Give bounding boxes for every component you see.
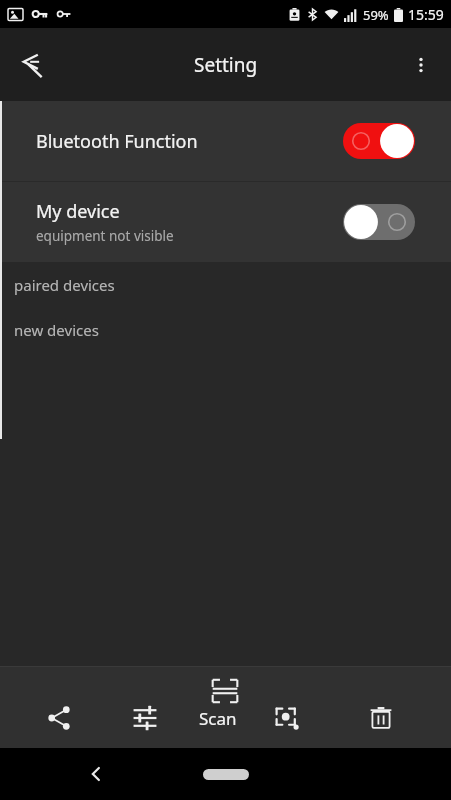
button[interactable]: Scan frame <box>203 669 247 713</box>
button[interactable]: Share <box>10 696 107 740</box>
button[interactable]: new devices <box>0 307 451 352</box>
staticText: Bluetooth Function <box>36 129 198 154</box>
button[interactable]: Back <box>76 754 116 794</box>
button[interactable]: Bluetooth Function <box>0 101 451 181</box>
button[interactable]: Focus scan <box>252 696 321 740</box>
staticText: 15:59 <box>408 5 444 24</box>
button[interactable]: On <box>343 123 415 159</box>
staticText: My device <box>36 199 120 224</box>
staticText: equipment not visible <box>36 227 174 245</box>
button[interactable]: Filter <box>107 696 183 740</box>
button[interactable]: My device <box>0 182 451 262</box>
button[interactable]: Delete <box>321 696 441 740</box>
staticText: 59% <box>363 6 389 24</box>
button[interactable]: paired devices <box>0 262 451 307</box>
staticText: Setting <box>194 52 258 78</box>
button[interactable]: Off <box>343 204 415 240</box>
button[interactable]: Home <box>198 761 254 787</box>
staticText: new devices <box>14 320 99 340</box>
button[interactable]: Back <box>8 39 60 91</box>
staticText: paired devices <box>14 275 115 295</box>
button[interactable]: Scan <box>183 698 252 738</box>
staticText: Scan <box>199 707 237 730</box>
button[interactable]: More options <box>397 41 445 89</box>
